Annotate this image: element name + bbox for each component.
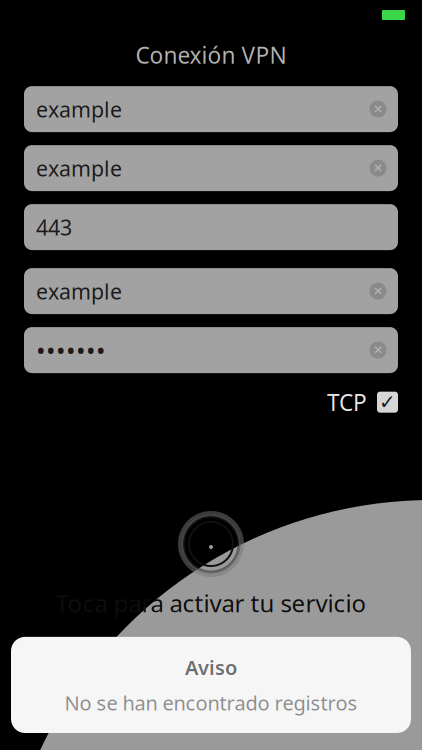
staticText: Conexión VPN <box>135 40 286 70</box>
staticText: ✕ <box>373 343 383 357</box>
button[interactable]: Borrar texto <box>363 268 393 314</box>
staticText: Toca para activar tu servicio <box>55 587 366 619</box>
button[interactable]: ••••••• <box>24 327 398 373</box>
button[interactable]: TCP <box>327 387 398 417</box>
staticText: ✓ <box>379 391 396 413</box>
button[interactable]: Borrar texto <box>363 145 393 191</box>
button[interactable]: example <box>24 145 398 191</box>
button[interactable]: 443 <box>24 204 398 250</box>
staticText: Aviso <box>185 654 237 680</box>
button[interactable]: example <box>24 268 398 314</box>
staticText: ✕ <box>373 284 383 298</box>
staticText: ✕ <box>373 102 383 116</box>
staticText: ••••••• <box>36 333 106 367</box>
staticText: example <box>36 95 122 123</box>
staticText: No se han encontrado registros <box>64 689 357 716</box>
staticText: example <box>36 154 122 182</box>
staticText: 443 <box>36 213 72 241</box>
staticText: TCP <box>327 387 367 417</box>
staticText: example <box>36 277 122 305</box>
button[interactable]: Borrar texto <box>363 327 393 373</box>
button[interactable]: Aviso <box>11 637 411 733</box>
button[interactable]: example <box>24 86 398 132</box>
staticText: ✕ <box>373 161 383 175</box>
button[interactable]: Borrar texto <box>363 86 393 132</box>
